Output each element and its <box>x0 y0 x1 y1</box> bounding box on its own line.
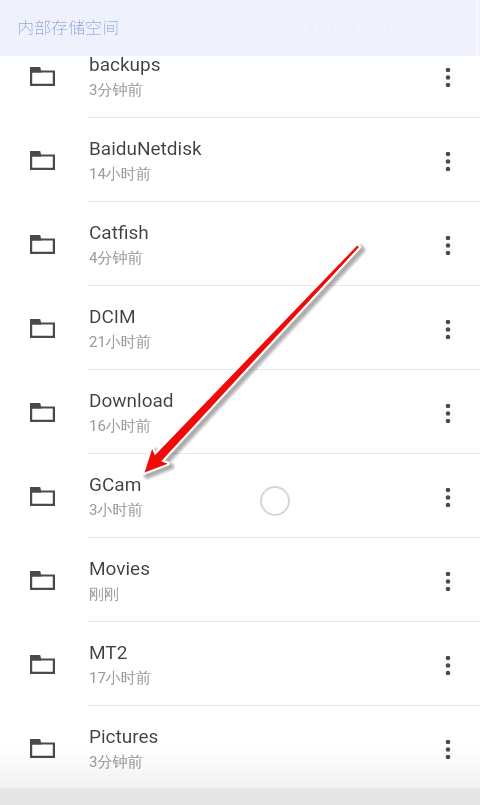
staticText: Download <box>89 389 174 411</box>
button[interactable]: GCam <box>0 454 480 538</box>
staticText: 14小时前 <box>89 165 151 184</box>
button[interactable]: More options <box>437 34 459 118</box>
staticText: 3分钟前 <box>89 753 143 772</box>
button[interactable]: More options <box>437 454 459 538</box>
button[interactable]: More options <box>437 622 459 706</box>
button[interactable]: backups <box>0 34 480 118</box>
staticText: BaiduNetdisk <box>89 137 202 159</box>
button[interactable]: Movies <box>0 538 480 622</box>
button[interactable]: BaiduNetdisk <box>0 118 480 202</box>
staticText: 刚刚 <box>89 585 119 604</box>
button[interactable]: More options <box>437 286 459 370</box>
button[interactable]: Download <box>0 370 480 454</box>
staticText: DCIM <box>89 305 136 327</box>
staticText: 内部存储空间 <box>17 14 119 39</box>
staticText: 4分钟前 <box>89 249 143 268</box>
staticText: Catfish <box>89 221 149 243</box>
staticText: 21小时前 <box>89 333 151 352</box>
button[interactable]: More options <box>437 202 459 286</box>
button[interactable]: More options <box>437 118 459 202</box>
staticText: MT2 <box>89 641 128 663</box>
button[interactable]: Catfish <box>0 202 480 286</box>
button[interactable]: Pictures <box>0 706 480 790</box>
staticText: 3小时前 <box>89 501 143 520</box>
button[interactable]: More options <box>437 706 459 790</box>
button[interactable]: More options <box>437 538 459 622</box>
staticText: Movies <box>89 557 150 579</box>
staticText: 17小时前 <box>89 669 151 688</box>
staticText: backups <box>89 53 161 75</box>
staticText: GCam <box>89 473 142 495</box>
staticText: Pictures <box>89 725 159 747</box>
staticText: 3分钟前 <box>89 81 143 100</box>
button[interactable]: MT2 <box>0 622 480 706</box>
staticText: 16小时前 <box>89 417 151 436</box>
button[interactable]: DCIM <box>0 286 480 370</box>
button[interactable]: More options <box>437 370 459 454</box>
